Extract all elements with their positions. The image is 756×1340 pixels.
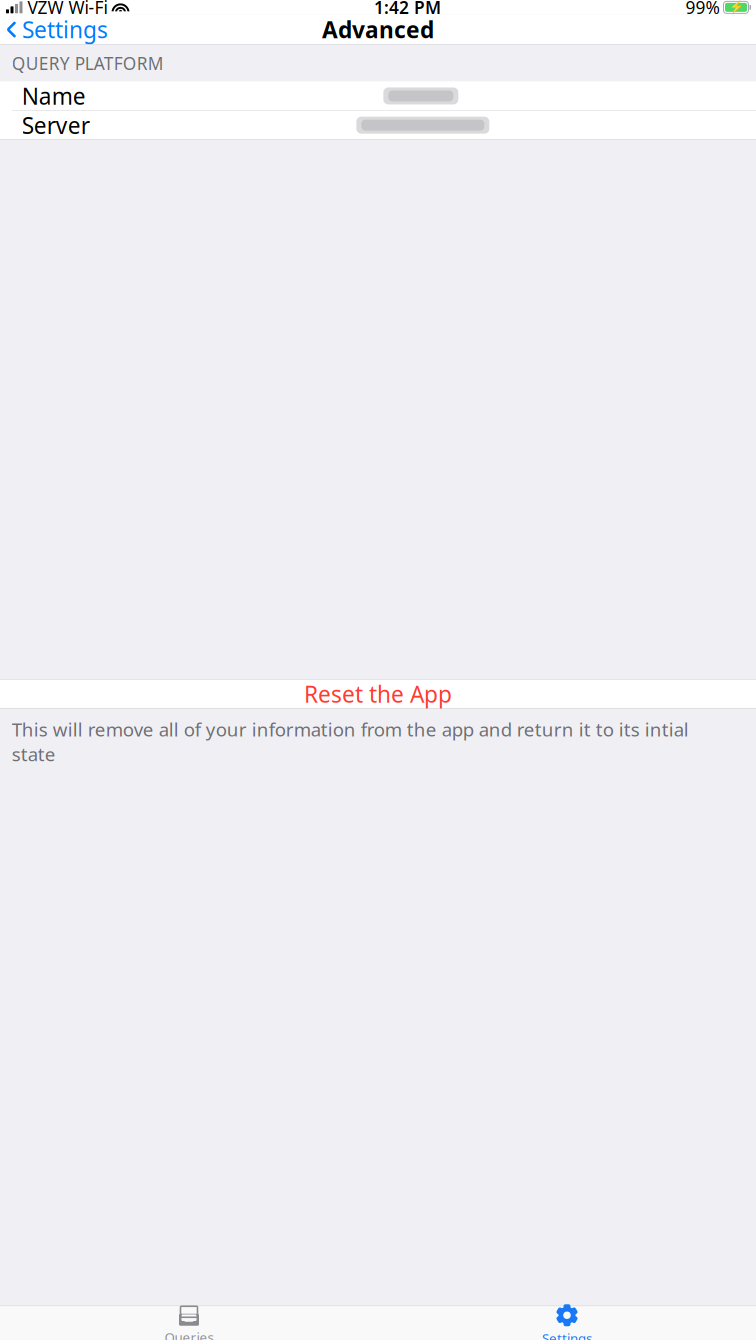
staticText: QUERY PLATFORM [12, 52, 164, 75]
staticText: 99% [685, 0, 719, 19]
staticText: Advanced [322, 14, 434, 45]
button[interactable]: Back to Settings [0, 8, 108, 51]
staticText: Name [22, 81, 86, 111]
button[interactable]: Settings [378, 1299, 756, 1340]
staticText: This will remove all of your information… [12, 717, 689, 766]
staticText: ⚡ [728, 0, 743, 14]
staticText: VZW Wi-Fi [27, 0, 107, 19]
staticText: Reset the App [304, 679, 452, 709]
button[interactable]: Queries [0, 1300, 378, 1340]
staticText: Settings [542, 1329, 592, 1340]
staticText: Settings [22, 14, 108, 45]
button[interactable]: Reset the App [0, 680, 756, 708]
staticText: Queries [164, 1328, 213, 1340]
staticText: Server [22, 110, 90, 140]
staticText: 1:42 PM [374, 0, 441, 19]
